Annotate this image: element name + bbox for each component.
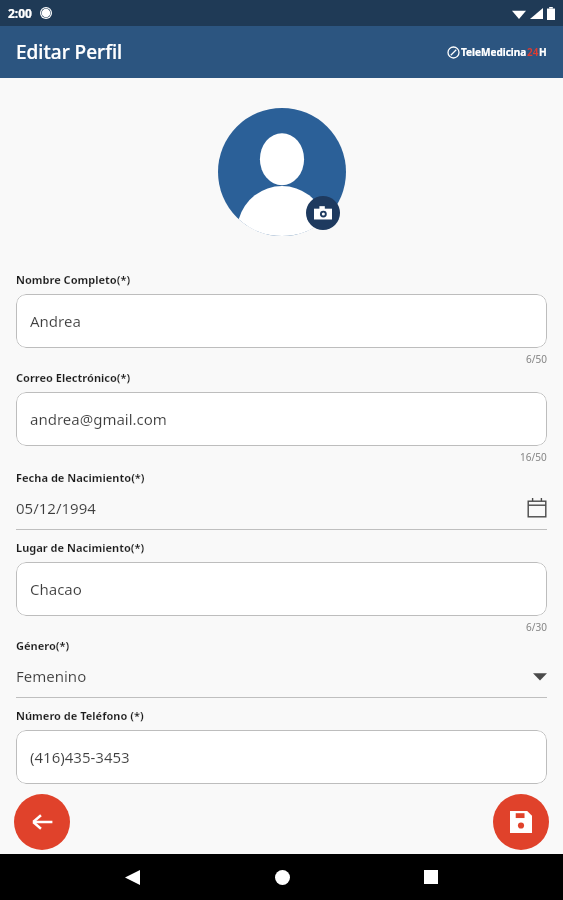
button[interactable]: Chacao xyxy=(16,562,547,616)
staticText: Número de Teléfono (*) xyxy=(16,708,144,723)
staticText: Editar Perfil xyxy=(16,39,123,65)
staticText: andrea@gmail.com xyxy=(30,409,167,429)
staticText: (416)435-3453 xyxy=(30,747,130,767)
other: Pick date xyxy=(527,498,547,518)
staticText: Género(*) xyxy=(16,638,70,653)
button[interactable]: Andrea xyxy=(16,294,547,348)
staticText: Lugar de Nacimiento(*) xyxy=(16,540,145,555)
staticText: 2:00 xyxy=(8,5,32,21)
staticText: Femenino xyxy=(16,666,87,686)
staticText: 6/30 xyxy=(526,620,547,634)
staticText: H xyxy=(539,45,547,59)
button[interactable]: Género(*) xyxy=(16,638,547,698)
staticText: 16/50 xyxy=(520,450,547,464)
staticText: TeleMedicina xyxy=(461,45,527,59)
staticText: Andrea xyxy=(30,311,81,331)
other: Open dropdown xyxy=(533,672,547,681)
button[interactable]: Change photo xyxy=(306,196,340,230)
button[interactable]: Back xyxy=(14,794,70,850)
button[interactable]: (416)435-3453 xyxy=(16,730,547,784)
staticText: Correo Electrónico(*) xyxy=(16,370,131,385)
staticText: 6/50 xyxy=(526,352,547,366)
staticText: Nombre Completo(*) xyxy=(16,272,131,287)
button[interactable]: Back xyxy=(114,859,150,895)
button[interactable]: Home xyxy=(264,859,300,895)
staticText: 05/12/1994 xyxy=(16,498,96,518)
button[interactable]: Recent apps xyxy=(413,859,449,895)
staticText: Fecha de Nacimiento(*) xyxy=(16,470,145,485)
button[interactable]: Fecha de Nacimiento(*) xyxy=(16,470,547,530)
staticText: Chacao xyxy=(30,579,82,599)
button[interactable]: Save xyxy=(493,794,549,850)
staticText: 24 xyxy=(527,45,539,59)
button[interactable]: andrea@gmail.com xyxy=(16,392,547,446)
